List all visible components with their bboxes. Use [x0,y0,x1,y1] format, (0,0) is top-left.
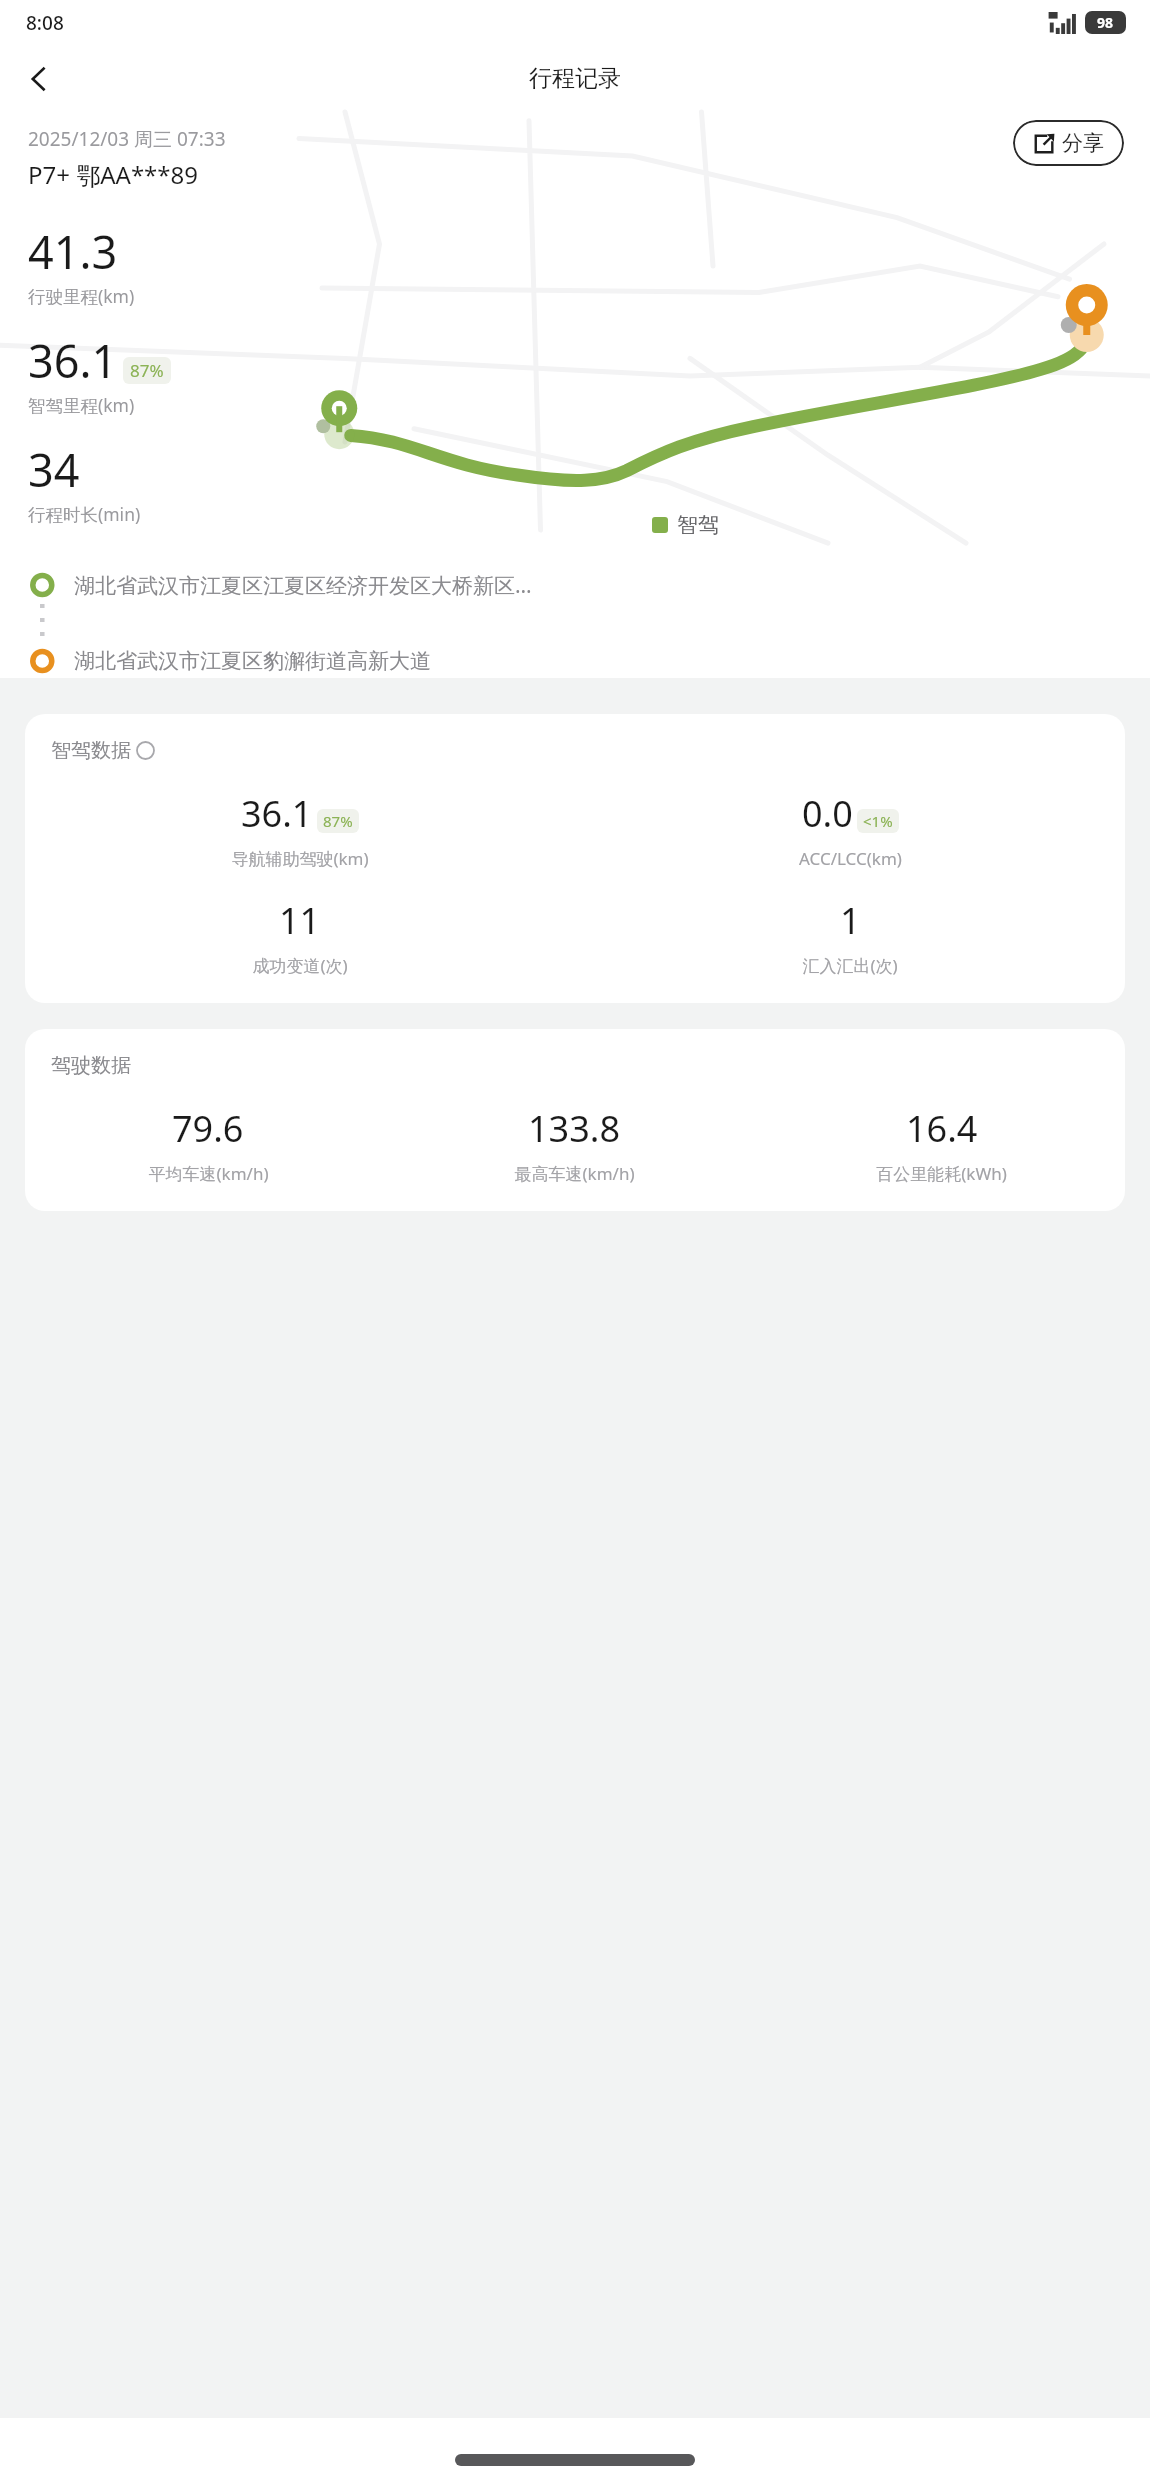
staticText: 87% [323,811,353,831]
staticText: 百公里能耗(kWh) [876,1162,1007,1185]
staticText: 1 [840,896,861,945]
staticText: P7+ 鄂AA***89 [28,158,199,191]
button[interactable]: Info [136,741,155,760]
staticText: 智驾里程(km) [28,393,135,417]
staticText: 34 [28,439,80,500]
button[interactable]: 分享 [1013,120,1124,166]
staticText: 36.1 [241,789,313,838]
staticText: 成功变道(次) [252,954,348,977]
staticText: 驾驶数据 [51,1053,131,1078]
staticText: 平均车速(km/h) [148,1162,269,1185]
staticText: 2025/12/03 周三 07:33 [28,126,226,152]
staticText: 湖北省武汉市江夏区江夏区经济开发区大桥新区… [74,571,532,600]
staticText: 湖北省武汉市江夏区豹澥街道高新大道 [74,648,431,674]
staticText: 0.0 [802,789,853,838]
staticText: 41.3 [28,221,118,282]
staticText: 133.8 [528,1104,621,1153]
staticText: 79.6 [172,1104,244,1153]
staticText: 智驾数据 [51,738,131,763]
staticText: 导航辅助驾驶(km) [231,847,369,870]
staticText: <1% [863,811,893,831]
staticText: 16.4 [906,1104,978,1153]
staticText: 87% [130,359,164,382]
button[interactable]: Back [12,52,66,106]
staticText: 行程记录 [529,64,621,93]
staticText: 11 [279,896,321,945]
staticText: 智驾 [677,512,719,538]
staticText: 98 [1097,13,1114,32]
staticText: 分享 [1062,130,1104,156]
staticText: 行驶里程(km) [28,284,135,308]
staticText: 最高车速(km/h) [514,1162,635,1185]
staticText: 行程时长(min) [28,502,141,526]
staticText: ACC/LCC(km) [799,847,902,870]
staticText: 36.1 [28,330,118,391]
staticText: 8:08 [26,10,64,36]
staticText: 汇入汇出(次) [802,954,898,977]
